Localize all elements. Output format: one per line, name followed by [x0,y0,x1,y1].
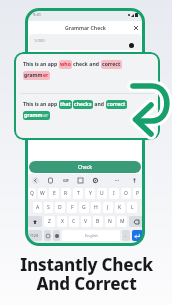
staticText: U [100,190,104,197]
staticText: J [107,204,109,211]
button[interactable]: . [122,230,130,241]
staticText: gramm [24,112,43,119]
staticText: 1/200 [34,38,45,43]
staticText: V [84,218,88,225]
button[interactable]: Back [31,176,40,185]
button[interactable]: G [79,202,89,213]
button[interactable]: H [91,202,101,213]
staticText: G [82,204,86,211]
staticText: A [36,204,40,211]
button[interactable]: Check [29,161,141,173]
staticText: English [85,233,98,238]
button[interactable]: L [127,202,137,213]
staticText: ?123 [30,233,39,238]
staticText: Q [30,190,34,197]
button[interactable]: F [67,202,77,213]
staticText: L [131,204,134,211]
button[interactable]: More [113,176,122,185]
staticText: O [124,190,128,197]
staticText: I [113,190,115,197]
button[interactable]: C [69,216,79,227]
button[interactable]: Voice input [130,176,139,185]
button[interactable]: Clipboard [46,176,55,185]
button[interactable]: Shift [27,216,42,227]
staticText: correct [102,61,121,68]
button[interactable]: Q [27,188,36,199]
staticText: who [60,61,71,68]
staticText: R [64,190,68,197]
button[interactable]: N [105,216,115,227]
button[interactable]: GIF [61,176,70,185]
button[interactable]: Clear [129,43,134,48]
staticText: . [125,232,127,239]
staticText: M [120,218,125,225]
button[interactable]: O [121,188,131,199]
button[interactable]: Emoji [44,230,51,241]
button[interactable]: U [97,188,107,199]
staticText: check [74,101,89,108]
staticText: and [93,101,106,108]
button[interactable]: A [33,202,42,213]
button[interactable]: English [62,230,120,241]
button[interactable]: I [109,188,119,199]
staticText: K [118,204,122,211]
button[interactable]: ?123 [27,230,42,241]
staticText: This is an app [23,61,59,68]
staticText: B [96,218,100,225]
button[interactable]: D [55,202,65,213]
button[interactable]: Y [85,188,95,199]
staticText: H [94,204,98,211]
button[interactable]: P [133,188,143,199]
button[interactable]: E [49,188,59,199]
staticText: gramm [24,72,43,79]
staticText: GIF [63,178,69,183]
staticText: P [136,190,140,197]
staticText: check [73,61,88,68]
staticText: N [108,218,112,225]
staticText: X [61,218,64,225]
staticText: and [88,61,101,68]
button[interactable]: Stickers [76,176,85,185]
staticText: S [47,204,50,211]
staticText: ••• [115,178,120,183]
staticText: C [72,218,76,225]
button[interactable]: Enter [132,230,143,241]
staticText: er [43,72,49,79]
button[interactable]: M [117,216,127,227]
staticText: s [89,101,92,108]
staticText: Instantly Check And Correct [20,253,153,295]
button[interactable]: K [115,202,125,213]
staticText: W [40,190,45,197]
button[interactable]: V [81,216,91,227]
staticText: that [60,101,71,108]
button[interactable]: Close [133,25,139,31]
button[interactable]: B [93,216,103,227]
staticText: E [53,190,56,197]
button[interactable]: Backspace [129,216,143,227]
staticText: correct [107,101,126,108]
staticText: D [58,204,62,211]
staticText: Z [48,218,51,225]
staticText: This is an app [23,101,59,108]
staticText: Check [78,164,92,171]
staticText: 9:41 [33,12,41,17]
button[interactable]: W [38,188,47,199]
staticText: Grammar Check [65,24,106,31]
staticText: Y [89,190,92,197]
staticText: ar [43,112,49,119]
staticText: T [77,190,80,197]
staticText: F [71,204,74,211]
button[interactable]: S [44,202,53,213]
button[interactable]: J [103,202,113,213]
button[interactable]: X [57,216,67,227]
button[interactable]: Language [53,230,60,241]
button[interactable]: R [61,188,71,199]
button[interactable]: Settings [91,176,100,185]
button[interactable]: Z [44,216,55,227]
button[interactable]: T [73,188,83,199]
